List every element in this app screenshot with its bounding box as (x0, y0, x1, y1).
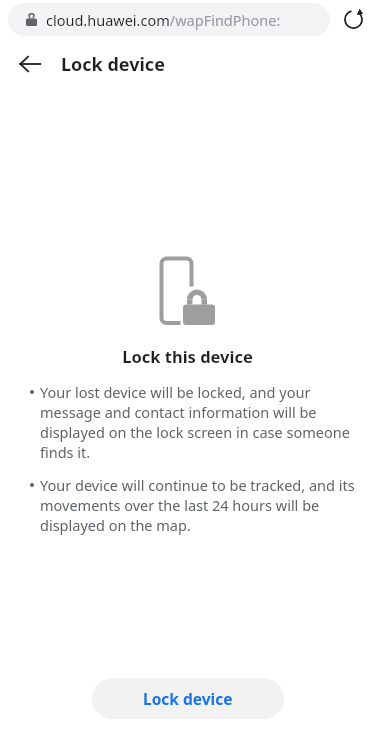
button[interactable]: Reload (335, 1, 371, 37)
staticText: cloud.huawei.com/wapFindPhone: (46, 10, 281, 30)
button[interactable]: cloud.huawei.com/wapFindPhone: (8, 3, 330, 36)
staticText: Lock this device (0, 345, 375, 367)
staticText: Your device will continue to be tracked,… (40, 475, 361, 535)
staticText: Lock device (143, 688, 233, 709)
button[interactable]: Lock device (92, 678, 284, 719)
staticText: Lock device (61, 52, 165, 77)
staticText: Your lost device will be locked, and you… (40, 382, 361, 462)
button[interactable]: Back (8, 42, 52, 86)
